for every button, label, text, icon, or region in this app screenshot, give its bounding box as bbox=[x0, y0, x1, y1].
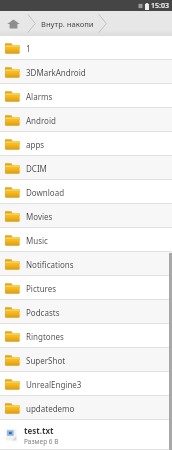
staticText: Podcasts bbox=[26, 307, 60, 318]
button[interactable]: Podcasts bbox=[0, 300, 172, 324]
staticText: 1 bbox=[26, 43, 31, 54]
staticText: Android bbox=[26, 115, 56, 126]
button[interactable]: test.txt bbox=[0, 420, 172, 450]
button[interactable]: 3DMarkAndroid bbox=[0, 60, 172, 84]
staticText: SuperShot bbox=[26, 355, 66, 366]
staticText: updatedemo bbox=[26, 403, 75, 414]
button[interactable]: Home bbox=[0, 11, 27, 36]
staticText: test.txt bbox=[24, 425, 54, 436]
staticText: Notifications bbox=[26, 259, 74, 270]
button[interactable]: 1 bbox=[0, 36, 172, 60]
button[interactable]: Внутр. накопи bbox=[36, 11, 98, 36]
button[interactable]: UnrealEngine3 bbox=[0, 372, 172, 396]
staticText: apps bbox=[26, 139, 45, 150]
button[interactable]: Pictures bbox=[0, 276, 172, 300]
button[interactable]: Music bbox=[0, 228, 172, 252]
staticText: Music bbox=[26, 235, 48, 246]
staticText: Movies bbox=[26, 211, 53, 222]
button[interactable]: SuperShot bbox=[0, 348, 172, 372]
button[interactable]: Movies bbox=[0, 204, 172, 228]
button[interactable]: Ringtones bbox=[0, 324, 172, 348]
staticText: Внутр. накопи bbox=[41, 19, 94, 29]
staticText: 3DMarkAndroid bbox=[26, 67, 86, 78]
staticText: Размер 6 В bbox=[24, 437, 59, 446]
staticText: 15:03 bbox=[151, 1, 169, 11]
button[interactable]: Alarms bbox=[0, 84, 172, 108]
staticText: Ringtones bbox=[26, 331, 64, 342]
button[interactable]: updatedemo bbox=[0, 396, 172, 420]
button[interactable]: apps bbox=[0, 132, 172, 156]
button[interactable]: Notifications bbox=[0, 252, 172, 276]
button[interactable]: Android bbox=[0, 108, 172, 132]
staticText: DCIM bbox=[26, 163, 47, 174]
staticText: Pictures bbox=[26, 283, 57, 294]
staticText: Alarms bbox=[26, 91, 53, 102]
button[interactable]: Download bbox=[0, 180, 172, 204]
staticText: Download bbox=[26, 187, 65, 198]
staticText: UnrealEngine3 bbox=[26, 379, 82, 390]
button[interactable]: DCIM bbox=[0, 156, 172, 180]
